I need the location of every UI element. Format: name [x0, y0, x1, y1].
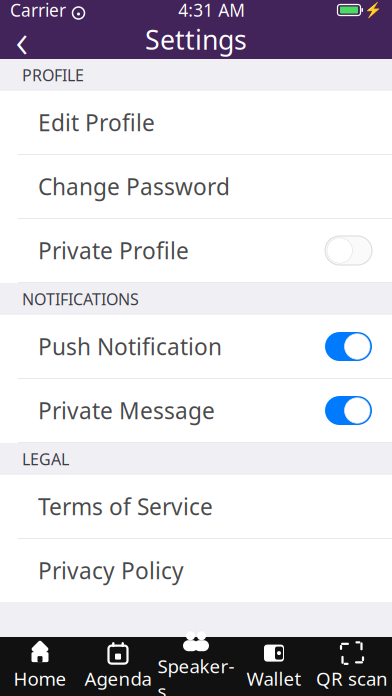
staticText: LEGAL: [22, 448, 69, 470]
staticText: QR scan: [316, 666, 388, 691]
staticText: 4:31 AM: [178, 0, 245, 21]
button[interactable]: Back: [0, 20, 44, 59]
staticText: PROFILE: [22, 64, 84, 86]
button[interactable]: Edit Profile: [0, 91, 392, 154]
staticText: Privacy Policy: [38, 555, 184, 585]
button[interactable]: Push Notification: [0, 315, 392, 378]
button[interactable]: Change Password: [0, 155, 392, 218]
staticText: Private Profile: [38, 235, 189, 265]
button[interactable]: Terms of Service: [0, 475, 392, 538]
staticText: Wallet: [246, 666, 301, 691]
button[interactable]: Private Message: [0, 379, 392, 442]
button[interactable]: Speakers: [157, 637, 235, 696]
staticText: Push Notification: [38, 331, 222, 361]
staticText: Agenda: [84, 666, 151, 691]
button[interactable]: Wallet: [235, 637, 313, 696]
staticText: Settings: [145, 22, 247, 57]
button[interactable]: Privacy Policy: [0, 539, 392, 602]
button[interactable]: Private Profile: [0, 219, 392, 282]
staticText: Speakers: [157, 654, 234, 696]
staticText: NOTIFICATIONS: [22, 288, 139, 310]
button[interactable]: Agenda: [79, 637, 157, 696]
staticText: Private Message: [38, 395, 215, 425]
staticText: Carrier: [10, 0, 66, 21]
staticText: ‹: [15, 8, 28, 71]
button[interactable]: Home: [1, 637, 79, 696]
staticText: Home: [13, 666, 66, 691]
staticText: Change Password: [38, 171, 230, 201]
staticText: Terms of Service: [38, 491, 213, 521]
staticText: Edit Profile: [38, 107, 155, 137]
staticText: ⚡: [364, 2, 382, 18]
button[interactable]: QR scan: [313, 637, 391, 696]
